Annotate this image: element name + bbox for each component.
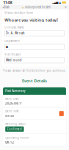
staticText: 11:08 <box>3 0 12 5</box>
staticText: ● <box>6 45 8 48</box>
staticText: Please answer all fields before you cont… <box>2 69 66 72</box>
staticText: visitorportal.health <box>25 5 51 9</box>
staticText: Ward round <box>6 58 22 62</box>
button[interactable]: Address <box>20 5 53 9</box>
staticText: ↻ <box>64 6 66 9</box>
staticText: Visit Summary <box>5 89 25 93</box>
staticText: Back <box>4 5 9 9</box>
staticText: Event Date <box>5 97 19 100</box>
staticText: OR-12 <box>5 141 14 144</box>
staticText: ▲ <box>59 1 61 4</box>
staticText: Operating Room <box>5 136 28 139</box>
staticText: ▂▄▆ <box>52 1 58 4</box>
staticText: Visit Reason <box>4 53 21 56</box>
staticText: Dr. A. Mensah <box>6 31 25 35</box>
staticText: Visitor check-in form <box>4 11 32 15</box>
staticText: Meeting Status <box>5 122 25 125</box>
staticText: Event Details <box>22 78 47 83</box>
button[interactable]: Reload <box>64 6 67 9</box>
staticText: Who are you visiting today? <box>4 17 58 22</box>
staticText: Event Time <box>5 109 19 113</box>
staticText: Clinician Name <box>4 26 24 29</box>
staticText: 2026-04-11 <box>5 102 23 105</box>
button[interactable]: Back <box>2 5 10 9</box>
staticText: 09:30 <box>5 114 14 118</box>
staticText: 🔒 <box>22 6 24 8</box>
staticText: Department <box>4 39 20 43</box>
staticText: ◂ <box>3 6 4 9</box>
staticText: Confirmed <box>7 127 22 131</box>
